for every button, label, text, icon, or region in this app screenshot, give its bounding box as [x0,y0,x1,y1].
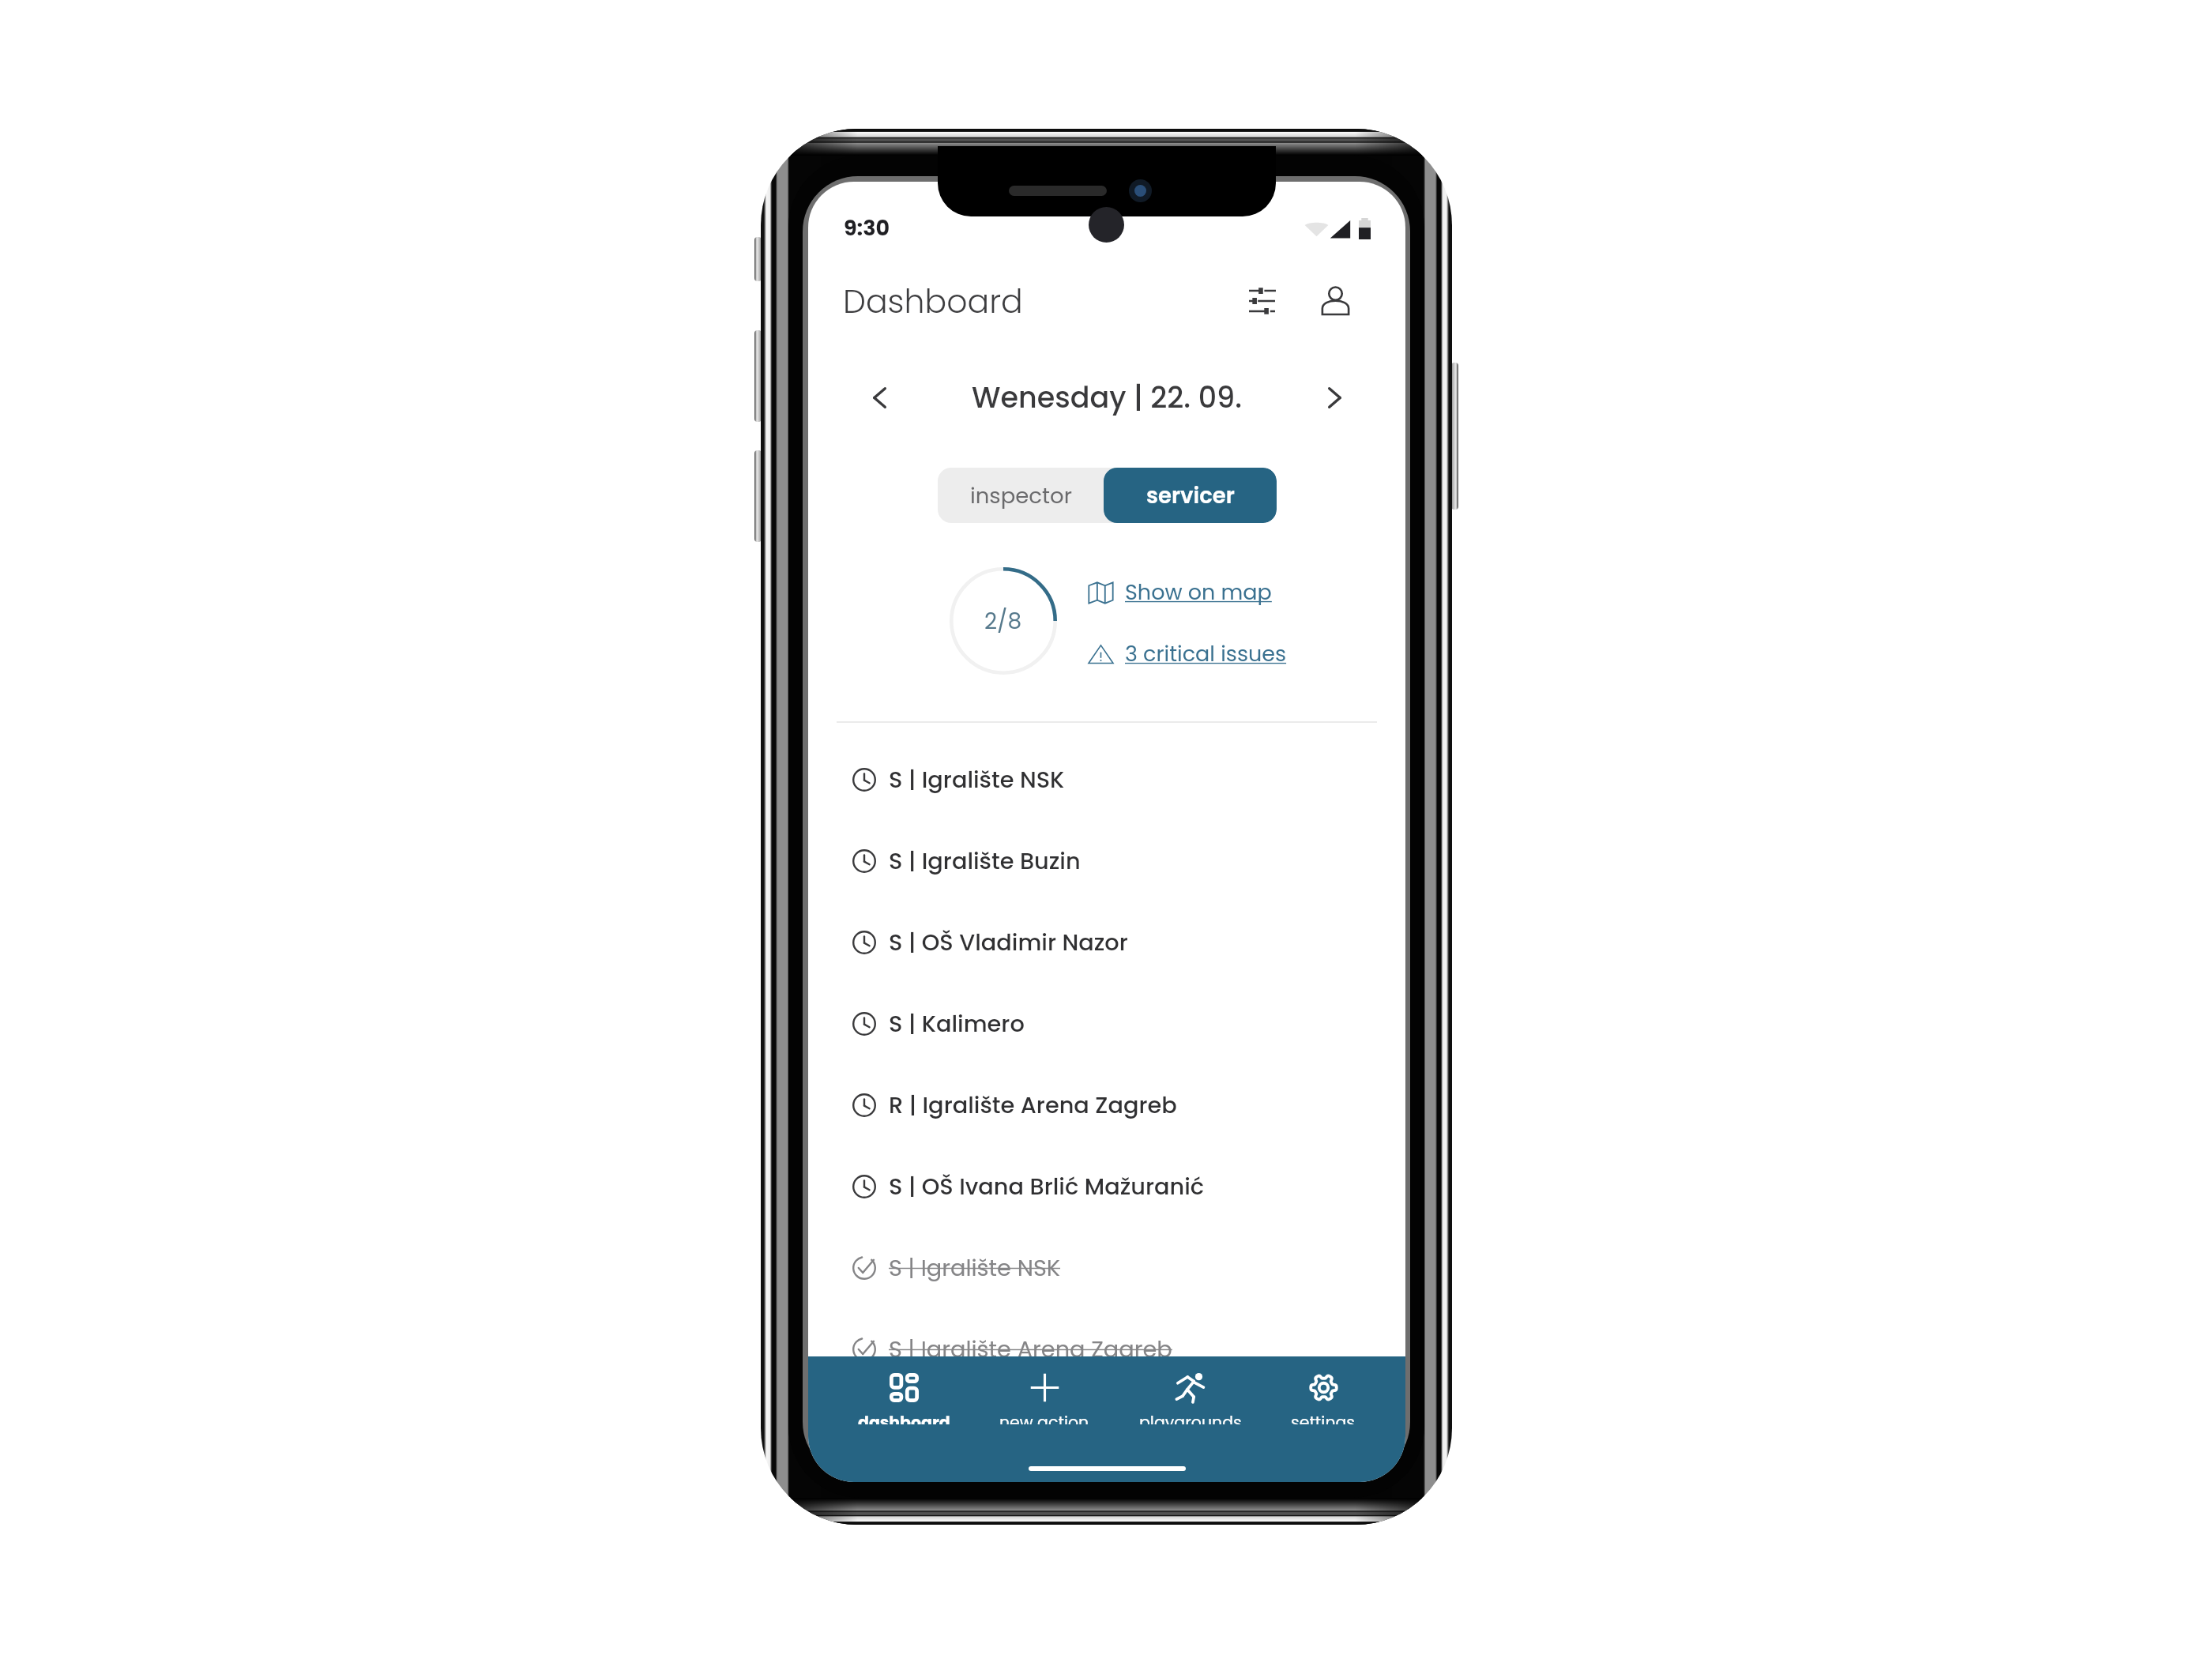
button[interactable]: R | Igralište Arena Zagreb [808,1064,1405,1145]
staticText: S | Igralište Buzin [889,845,1081,877]
staticText: S | Kalimero [889,1008,1025,1040]
button[interactable]: Filter [1237,276,1288,326]
staticText: R | Igralište Arena Zagreb [889,1089,1177,1121]
button[interactable]: inspector [938,468,1104,523]
staticText: S | Igralište Arena Zagreb [889,1334,1172,1365]
button[interactable]: playgrounds [1139,1356,1242,1435]
button[interactable]: dashboard [858,1356,950,1435]
staticText: 2/8 [984,606,1022,637]
button[interactable]: S | Igralište NSK [808,739,1405,820]
staticText: S | Igralište NSK [889,1252,1061,1284]
staticText: inspector [970,480,1072,510]
staticText: Dashboard [843,279,1023,324]
staticText: new action [999,1411,1089,1424]
staticText: settings [1291,1411,1356,1424]
button[interactable]: Show on map [1088,574,1272,611]
staticText: 9:30 [844,213,890,243]
button[interactable]: S | Igralište Buzin [808,820,1405,901]
staticText: S | OŠ Vladimir Nazor [889,927,1128,958]
staticText: S | OŠ Ivana Brlić Mažuranić [889,1171,1205,1202]
button[interactable]: S | Kalimero [808,983,1405,1064]
button[interactable]: new action [999,1356,1089,1435]
staticText: dashboard [858,1411,950,1424]
button[interactable]: settings [1291,1356,1356,1435]
button[interactable]: S | Igralište Arena Zagreb [808,1308,1405,1390]
staticText: Wenesday | 22. 09. [972,378,1243,418]
button[interactable]: S | Igralište NSK [808,1227,1405,1308]
staticText: Show on map [1125,577,1272,608]
button[interactable]: Next day [1307,370,1362,425]
button[interactable]: 3 critical issues [1088,636,1287,672]
button[interactable]: servicer [1104,468,1277,523]
button[interactable]: S | OŠ Vladimir Nazor [808,901,1405,983]
staticText: S | Igralište NSK [889,764,1065,796]
button[interactable]: S | OŠ Ivana Brlić Mažuranić [808,1145,1405,1227]
button[interactable]: Previous day [852,370,907,425]
staticText: playgrounds [1139,1411,1242,1424]
staticText: 3 critical issues [1125,639,1287,669]
staticText: servicer [1146,480,1235,510]
button[interactable]: Profile [1310,276,1360,326]
